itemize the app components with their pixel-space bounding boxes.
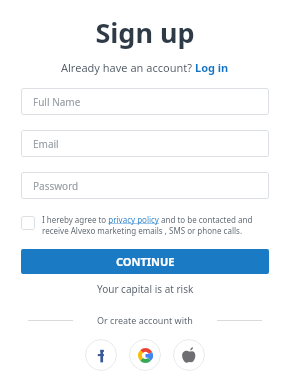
staticText: I hereby agree to privacy policy and to …: [42, 214, 269, 236]
button[interactable]: CONTINUE: [21, 249, 269, 274]
staticText: Your capital is at risk: [97, 282, 194, 296]
button[interactable]: Sign up with Google: [129, 339, 161, 371]
button[interactable]: Password: [21, 172, 269, 199]
staticText: Sign up: [95, 14, 195, 51]
staticText: Or create account with: [97, 314, 193, 326]
button[interactable]: Email: [21, 130, 269, 157]
staticText: Log in: [195, 60, 229, 75]
staticText: Email: [33, 137, 59, 151]
button[interactable]: Sign up with Apple: [173, 339, 205, 371]
button[interactable]: Sign up with Facebook: [85, 339, 117, 371]
staticText: Password: [33, 179, 79, 193]
staticText: CONTINUE: [116, 254, 175, 269]
staticText: Already have an account?: [61, 60, 195, 75]
button[interactable]: Full Name: [21, 88, 269, 115]
staticText: Full Name: [33, 95, 81, 109]
button[interactable]: I hereby agree to privacy policy and to …: [21, 214, 269, 236]
button[interactable]: Log in: [195, 60, 229, 75]
